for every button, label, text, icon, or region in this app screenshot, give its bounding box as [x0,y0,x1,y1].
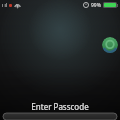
staticText: ı ıl [2,2,8,9]
other: Wi-Fi [14,2,21,9]
button[interactable]: WhatsApp notification [102,37,118,53]
staticText: Enter Passcode [31,101,89,112]
other: Alarm [83,2,89,8]
staticText: 99% [91,2,101,9]
button[interactable]: Enter Passcode [0,100,120,113]
